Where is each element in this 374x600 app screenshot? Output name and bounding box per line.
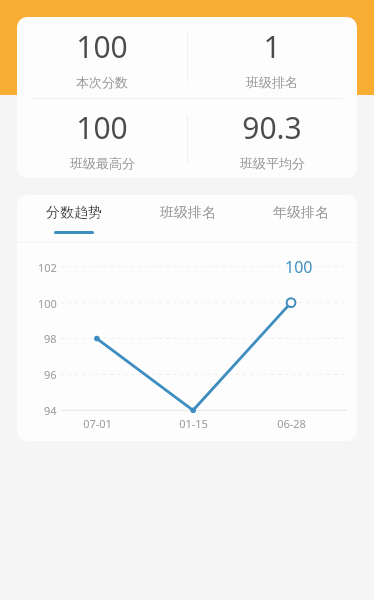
staticText: 90.3 [242, 107, 302, 148]
staticText: 班级最高分 [70, 155, 135, 171]
staticText: 本次分数 [76, 74, 128, 90]
button[interactable]: 100 [17, 17, 187, 98]
staticText: 班级平均分 [240, 155, 305, 171]
staticText: 100 [76, 107, 128, 148]
staticText: 98 [44, 331, 57, 346]
button[interactable]: 年级排名 [244, 195, 357, 242]
button[interactable]: 100 [17, 99, 187, 178]
staticText: 94 [44, 403, 57, 418]
staticText: 1 [263, 26, 281, 67]
staticText: 班级排名 [246, 74, 298, 90]
staticText: 07-01 [83, 416, 112, 431]
staticText: 96 [44, 367, 57, 382]
button[interactable]: 1 [187, 17, 357, 98]
staticText: 01-15 [179, 416, 208, 431]
button[interactable]: 分数趋势 [17, 195, 131, 242]
other: 分数趋势折线图 [17, 243, 357, 441]
staticText: 100 [76, 26, 128, 67]
button[interactable]: 班级排名 [131, 195, 244, 242]
staticText: 100 [38, 296, 57, 311]
staticText: 年级排名 [273, 204, 329, 222]
staticText: 100 [285, 256, 313, 278]
button[interactable]: 90.3 [187, 99, 357, 178]
staticText: 06-28 [277, 416, 306, 431]
staticText: 102 [38, 260, 57, 275]
staticText: 分数趋势 [46, 204, 102, 222]
staticText: 班级排名 [160, 204, 216, 222]
